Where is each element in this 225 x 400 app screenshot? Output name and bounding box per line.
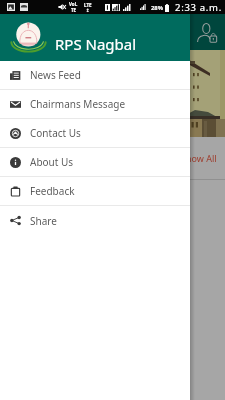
button[interactable]: Share: [0, 206, 190, 235]
staticText: LTE: [84, 2, 92, 8]
staticText: 2:33 a.m.: [175, 1, 222, 14]
staticText: News Feed: [30, 68, 81, 82]
staticText: About Us: [30, 155, 74, 169]
staticText: 28%: [151, 4, 163, 12]
staticText: TE: [71, 7, 77, 13]
button[interactable]: About Us: [0, 148, 190, 177]
staticText: Contact Us: [30, 126, 81, 140]
staticText: VoL: [69, 1, 78, 7]
button[interactable]: Show All: [181, 152, 217, 164]
button[interactable]: Feedback: [0, 177, 190, 206]
staticText: Share: [30, 214, 57, 228]
button[interactable]: Account login: [193, 18, 221, 46]
button[interactable]: Contact Us: [0, 119, 190, 148]
staticText: ↕: [86, 8, 90, 13]
staticText: RPS Nagbal: [55, 34, 137, 54]
button[interactable]: News Feed: [0, 61, 190, 90]
staticText: Feedback: [30, 184, 75, 198]
staticText: Chairmans Message: [30, 97, 126, 111]
button[interactable]: Chairmans Message: [0, 90, 190, 119]
